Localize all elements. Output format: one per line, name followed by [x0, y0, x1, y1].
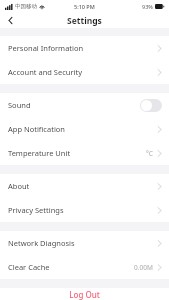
staticText: 中国移动: [15, 3, 37, 10]
other: Sound toggle: [140, 99, 162, 112]
staticText: App Notification: [8, 124, 65, 134]
staticText: About: [8, 181, 30, 191]
button[interactable]: Network Diagnosis: [0, 231, 169, 255]
staticText: Personal Information: [8, 43, 84, 53]
staticText: Privacy Settings: [8, 205, 64, 215]
button[interactable]: Account and Security: [0, 60, 169, 84]
staticText: 93%: [142, 3, 153, 10]
staticText: Clear Cache: [8, 262, 50, 272]
button[interactable]: Log Out: [0, 288, 169, 300]
staticText: Sound: [8, 100, 31, 110]
staticText: Account and Security: [8, 67, 83, 77]
button[interactable]: Temperature Unit: [0, 141, 169, 165]
button[interactable]: Sound: [0, 93, 169, 117]
button[interactable]: App Notification: [0, 117, 169, 141]
button[interactable]: Privacy Settings: [0, 198, 169, 222]
button[interactable]: Back: [0, 13, 20, 28]
staticText: Settings: [67, 15, 102, 27]
staticText: 0.00M: [134, 263, 153, 272]
staticText: Log Out: [69, 289, 100, 300]
button[interactable]: Clear Cache: [0, 255, 169, 279]
staticText: 5:10 PM: [74, 3, 95, 10]
button[interactable]: Personal Information: [0, 36, 169, 60]
staticText: Network Diagnosis: [8, 238, 75, 248]
staticText: Temperature Unit: [8, 148, 71, 158]
staticText: °C: [146, 149, 153, 158]
button[interactable]: About: [0, 174, 169, 198]
